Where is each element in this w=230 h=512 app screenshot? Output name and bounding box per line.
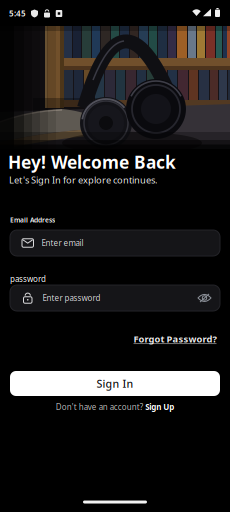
button[interactable]: Enter password (10, 285, 220, 311)
staticText: Email Address (10, 216, 55, 224)
staticText: Forgot Password? (133, 333, 216, 345)
button[interactable]: Show password (198, 294, 211, 302)
staticText: Enter email (41, 238, 83, 248)
button[interactable]: Forgot Password? (133, 333, 216, 345)
button[interactable]: Sign Up (145, 402, 174, 412)
staticText: 5:45 (9, 8, 26, 19)
button[interactable]: Sign In (10, 371, 220, 396)
staticText: Sign Up (145, 402, 174, 412)
staticText: password (10, 274, 46, 284)
staticText: Enter password (42, 293, 100, 303)
staticText: Don't have an account? (56, 402, 143, 412)
staticText: Let's Sign In for explore continues. (9, 174, 158, 186)
button[interactable]: Enter email (10, 230, 220, 256)
staticText: Sign In (96, 376, 133, 391)
staticText: Hey! Welcome Back (8, 150, 176, 173)
